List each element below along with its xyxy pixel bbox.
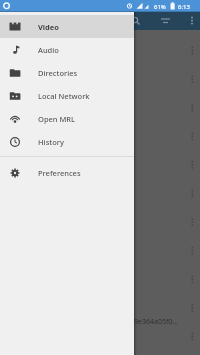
button[interactable]: Video [0,15,134,38]
button[interactable]: Directories [0,61,134,84]
staticText: Preferences [38,168,81,178]
button[interactable]: Local Network [0,84,134,107]
button[interactable]: Open MRL [0,107,134,130]
staticText: Open MRL [38,114,76,124]
button[interactable]: History [0,130,134,153]
staticText: 61% [154,3,166,11]
staticText: Directories [38,68,78,78]
button[interactable]: Preferences [0,161,134,184]
button[interactable]: Audio [0,38,134,61]
staticText: Audio [38,45,59,55]
staticText: Local Network [38,91,90,101]
staticText: Video [38,22,60,32]
staticText: 6:13 [178,3,190,11]
staticText: History [38,137,64,147]
staticText: 9e364a05f0... [134,317,178,327]
